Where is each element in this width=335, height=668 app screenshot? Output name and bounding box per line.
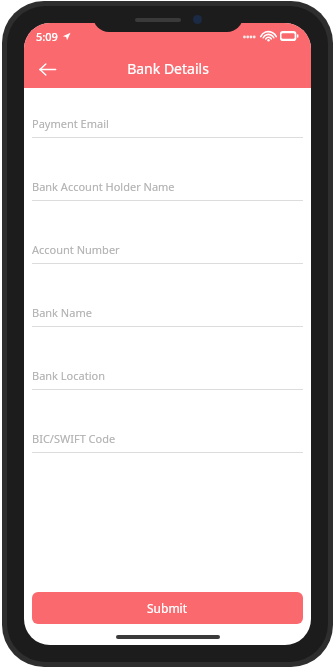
staticText: Account Number bbox=[32, 242, 120, 257]
button[interactable]: Payment Email bbox=[32, 107, 303, 170]
button[interactable]: BIC/SWIFT Code bbox=[32, 422, 303, 485]
button[interactable]: Bank Account Holder Name bbox=[32, 170, 303, 233]
button[interactable]: Back bbox=[30, 52, 64, 86]
staticText: Bank Details bbox=[127, 59, 209, 78]
staticText: Bank Name bbox=[32, 305, 92, 320]
staticText: Payment Email bbox=[32, 116, 109, 131]
staticText: 5:09 bbox=[36, 29, 58, 44]
button[interactable]: Bank Location bbox=[32, 359, 303, 422]
button[interactable]: Bank Name bbox=[32, 296, 303, 359]
button[interactable]: Account Number bbox=[32, 233, 303, 296]
staticText: Bank Location bbox=[32, 368, 105, 383]
button[interactable]: Submit bbox=[32, 592, 303, 624]
staticText: Bank Account Holder Name bbox=[32, 179, 175, 194]
staticText: BIC/SWIFT Code bbox=[32, 431, 116, 446]
staticText: Submit bbox=[147, 600, 188, 616]
